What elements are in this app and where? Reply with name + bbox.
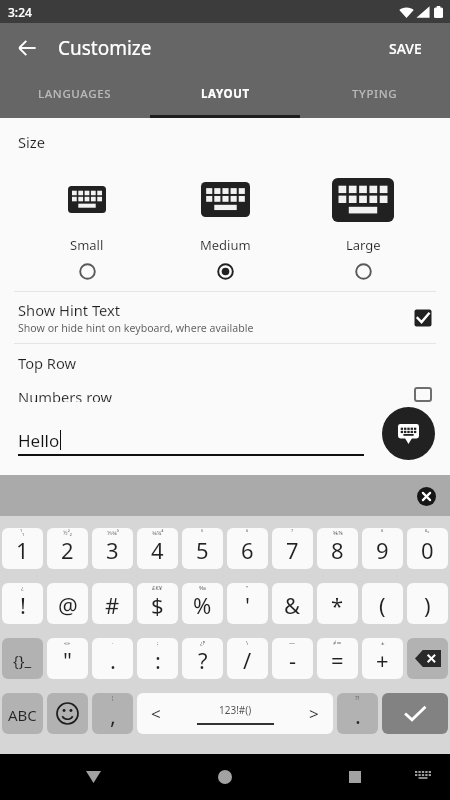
staticText: :: [155, 645, 161, 675]
button[interactable]: ·: [92, 638, 133, 679]
staticText: ¹₁: [20, 529, 25, 537]
button[interactable]: Hide keyboard: [382, 407, 435, 460]
staticText: *: [331, 590, 344, 620]
button[interactable]: Back: [9, 30, 45, 66]
button[interactable]: Recents: [335, 757, 375, 797]
staticText: Show or hide hint on keyboard, where ava…: [18, 321, 254, 335]
staticText: ": [63, 645, 72, 675]
staticText: ABC: [8, 705, 37, 725]
staticText: .: [355, 700, 361, 730]
staticText: @: [58, 590, 78, 620]
staticText: +: [376, 645, 389, 675]
staticText: ¦: [111, 694, 115, 702]
button[interactable]: «»: [47, 638, 88, 679]
staticText: ⁷: [291, 529, 294, 537]
button[interactable]: ‘’: [227, 583, 268, 624]
staticText: ⁹: [381, 529, 384, 537]
staticText: {}_: [13, 650, 32, 670]
staticText: LAYOUT: [201, 86, 250, 102]
button[interactable]: Small: [18, 176, 156, 280]
staticText: ¿‽: [200, 639, 206, 647]
staticText: ±: [381, 639, 385, 647]
staticText: $: [151, 590, 164, 620]
staticText: !: [20, 590, 26, 620]
button[interactable]: Close suggestions: [413, 483, 439, 509]
staticText: —: [289, 639, 296, 647]
button[interactable]: Switch keyboard: [405, 759, 441, 795]
button[interactable]: Medium: [156, 176, 294, 280]
button[interactable]: ⁷: [272, 528, 313, 569]
staticText: 7: [286, 535, 299, 565]
staticText: ,: [110, 700, 116, 730]
button[interactable]: Large: [294, 176, 432, 280]
staticText: LANGUAGES: [38, 86, 112, 102]
staticText: 9: [376, 535, 389, 565]
staticText: 0: [421, 535, 434, 565]
button[interactable]: ⁹: [362, 528, 403, 569]
button[interactable]: ≠≈: [317, 638, 358, 679]
button[interactable]: \: [227, 638, 268, 679]
button[interactable]: ‰: [182, 583, 223, 624]
staticText: ¿: [21, 584, 24, 592]
button[interactable]: ±: [362, 638, 403, 679]
staticText: Show Hint Text: [18, 300, 121, 320]
staticText: TYPING: [352, 86, 398, 102]
button[interactable]: (: [362, 583, 403, 624]
staticText: ¾¼⁴: [152, 529, 164, 537]
button[interactable]: ): [407, 583, 448, 624]
button[interactable]: ⁵: [182, 528, 223, 569]
button[interactable]: ?!: [337, 693, 378, 734]
button[interactable]: ½²₂: [47, 528, 88, 569]
button[interactable]: LAYOUT: [150, 73, 300, 118]
button[interactable]: ¾¼⁴: [137, 528, 178, 569]
button[interactable]: ¹₁: [2, 528, 43, 569]
button[interactable]: ¦: [92, 693, 133, 734]
button[interactable]: ⅓¾³: [92, 528, 133, 569]
staticText: 3: [106, 535, 119, 565]
button[interactable]: @: [47, 583, 88, 624]
button[interactable]: &: [272, 583, 313, 624]
button[interactable]: ⁰°: [407, 528, 448, 569]
button[interactable]: Show Hint Text: [0, 292, 450, 343]
button[interactable]: Back: [73, 757, 113, 797]
button[interactable]: {}_: [2, 638, 43, 679]
button[interactable]: ;: [137, 638, 178, 679]
button[interactable]: —: [272, 638, 313, 679]
staticText: (: [379, 590, 386, 620]
button[interactable]: <: [137, 693, 333, 734]
button[interactable]: ⅝⅞: [317, 528, 358, 569]
button[interactable]: ¿‽: [182, 638, 223, 679]
button[interactable]: SAVE: [361, 26, 450, 71]
staticText: Top Row: [18, 353, 77, 373]
staticText: Large: [346, 236, 381, 254]
button[interactable]: £€¥: [137, 583, 178, 624]
staticText: >: [309, 702, 319, 725]
staticText: ‰: [199, 584, 207, 592]
button[interactable]: TYPING: [300, 73, 450, 118]
staticText: ?: [198, 645, 208, 675]
button[interactable]: [407, 638, 448, 679]
staticText: 5: [196, 535, 209, 565]
staticText: Numbers row: [18, 387, 414, 402]
staticText: ;: [157, 639, 159, 647]
staticText: ⁵: [201, 529, 204, 537]
button[interactable]: #: [92, 583, 133, 624]
button[interactable]: *: [317, 583, 358, 624]
staticText: «»: [64, 639, 71, 647]
button[interactable]: ABC: [2, 693, 43, 734]
staticText: 8: [331, 535, 344, 565]
staticText: 2: [61, 535, 74, 565]
staticText: Medium: [200, 236, 251, 254]
staticText: 3:24: [8, 4, 32, 20]
staticText: SAVE: [389, 39, 422, 58]
button[interactable]: Numbers row: [0, 387, 450, 402]
staticText: %: [193, 590, 212, 620]
button[interactable]: [47, 693, 88, 734]
button[interactable]: [382, 693, 448, 734]
button[interactable]: ⁶: [227, 528, 268, 569]
button[interactable]: LANGUAGES: [0, 73, 150, 118]
staticText: /: [243, 645, 252, 675]
button[interactable]: Home: [205, 757, 245, 797]
button[interactable]: ¿: [2, 583, 43, 624]
staticText: £€¥: [152, 584, 163, 592]
